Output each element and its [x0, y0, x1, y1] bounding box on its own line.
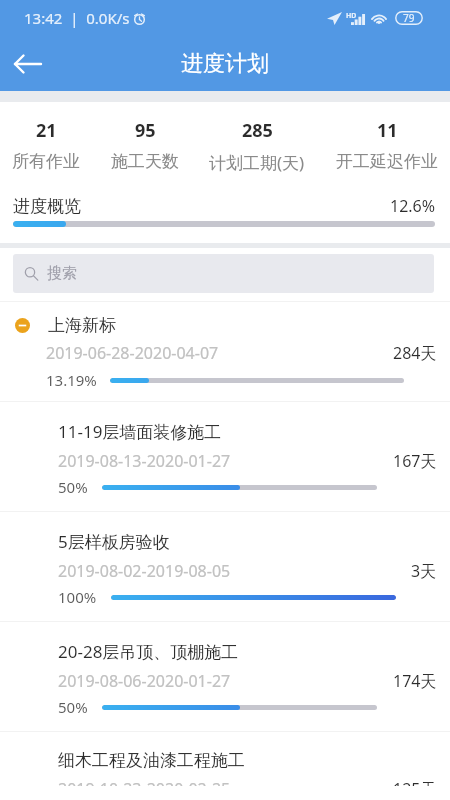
- staticText: 施工天数: [111, 151, 179, 172]
- staticText: 12.6%: [390, 195, 436, 217]
- staticText: 125天: [393, 778, 437, 786]
- button[interactable]: 上海新标: [0, 302, 450, 401]
- staticText: 计划工期(天): [209, 151, 305, 174]
- staticText: 285: [242, 118, 273, 143]
- staticText: 50%: [58, 477, 88, 497]
- staticText: 11: [377, 118, 398, 143]
- staticText: 100%: [58, 587, 97, 607]
- staticText: 细木工程及油漆工程施工: [58, 750, 245, 771]
- staticText: 21: [36, 118, 57, 143]
- staticText: 搜索: [47, 264, 77, 283]
- staticText: 5层样板房验收: [58, 530, 170, 553]
- button[interactable]: 细木工程及油漆工程施工: [0, 732, 450, 800]
- button[interactable]: Back: [3, 39, 53, 89]
- button[interactable]: 搜索: [13, 254, 434, 293]
- staticText: 3天: [411, 560, 437, 582]
- staticText: 上海新标: [48, 315, 116, 336]
- staticText: 13:42 | 0.0K/s: [24, 8, 130, 28]
- staticText: 开工延迟作业: [336, 151, 438, 172]
- staticText: HD: [346, 11, 357, 21]
- button[interactable]: 11-19层墙面装修施工: [0, 402, 450, 511]
- staticText: 79: [403, 11, 415, 25]
- button[interactable]: 5层样板房验收: [0, 512, 450, 621]
- staticText: 2019-10-23-2020-02-25: [58, 778, 231, 786]
- staticText: 13.19%: [46, 370, 97, 390]
- staticText: 50%: [58, 697, 88, 717]
- staticText: 2019-08-13-2020-01-27: [58, 450, 231, 472]
- staticText: 95: [135, 118, 156, 143]
- staticText: 11-19层墙面装修施工: [58, 420, 222, 443]
- staticText: 进度计划: [181, 50, 269, 78]
- staticText: 174天: [393, 670, 437, 692]
- staticText: 进度概览: [13, 196, 81, 217]
- staticText: 20-28层吊顶、顶棚施工: [58, 640, 239, 663]
- staticText: 167天: [393, 450, 437, 472]
- staticText: 所有作业: [12, 151, 80, 172]
- staticText: 284天: [393, 342, 437, 364]
- button[interactable]: 20-28层吊顶、顶棚施工: [0, 622, 450, 731]
- staticText: 2019-08-02-2019-08-05: [58, 560, 231, 582]
- staticText: 2019-06-28-2020-04-07: [46, 342, 219, 364]
- staticText: 2019-08-06-2020-01-27: [58, 670, 231, 692]
